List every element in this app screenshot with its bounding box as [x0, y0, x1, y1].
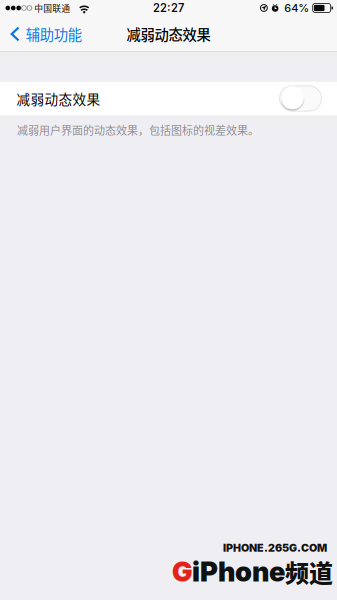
staticText: 频道 [285, 554, 333, 589]
staticText: 中国联通 [34, 2, 70, 14]
staticText: G [172, 555, 192, 588]
staticText: 22:27 [153, 1, 184, 15]
staticText: 减弱动态效果 [126, 24, 210, 44]
staticText: iPhone [192, 555, 285, 588]
staticText: IPHONE.265G.COM [223, 541, 327, 554]
button[interactable]: 辅助功能 [0, 16, 90, 52]
staticText: 减弱动态效果 [16, 89, 100, 108]
button[interactable]: 减弱动态效果 [0, 81, 337, 116]
staticText: 64% [284, 1, 309, 15]
staticText: 减弱用户界面的动态效果，包括图标的视差效果。 [17, 122, 259, 138]
staticText: 辅助功能 [26, 24, 82, 44]
